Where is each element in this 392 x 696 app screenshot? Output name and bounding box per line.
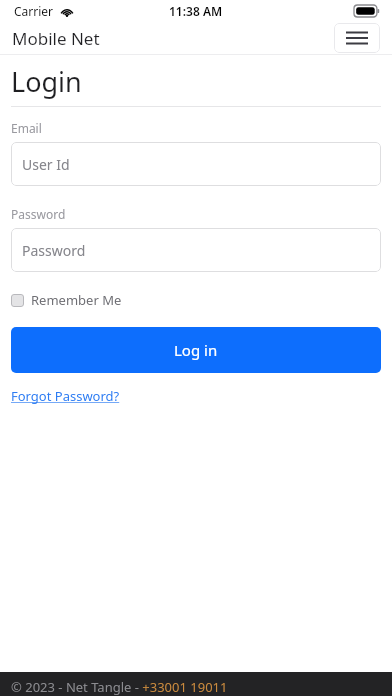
staticText: © 2023 - Net Tangle - +33001 19011: [11, 678, 228, 696]
button[interactable]: Password: [11, 228, 381, 272]
button[interactable]: Log in: [11, 327, 381, 373]
button[interactable]: Remember Me: [11, 291, 122, 309]
staticText: Forgot Password?: [11, 387, 120, 405]
staticText: 11:38 AM: [169, 3, 223, 19]
button[interactable]: Open menu: [334, 23, 380, 53]
button[interactable]: Forgot Password?: [11, 387, 120, 405]
staticText: Carrier: [14, 3, 54, 19]
staticText: Remember Me: [31, 291, 122, 309]
staticText: Mobile Net: [12, 27, 100, 50]
staticText: Log in: [174, 340, 218, 360]
staticText: Password: [22, 241, 86, 260]
staticText: User Id: [22, 155, 70, 174]
button[interactable]: User Id: [11, 142, 381, 186]
staticText: Login: [11, 63, 82, 100]
staticText: Password: [11, 206, 66, 222]
staticText: Email: [11, 120, 42, 136]
